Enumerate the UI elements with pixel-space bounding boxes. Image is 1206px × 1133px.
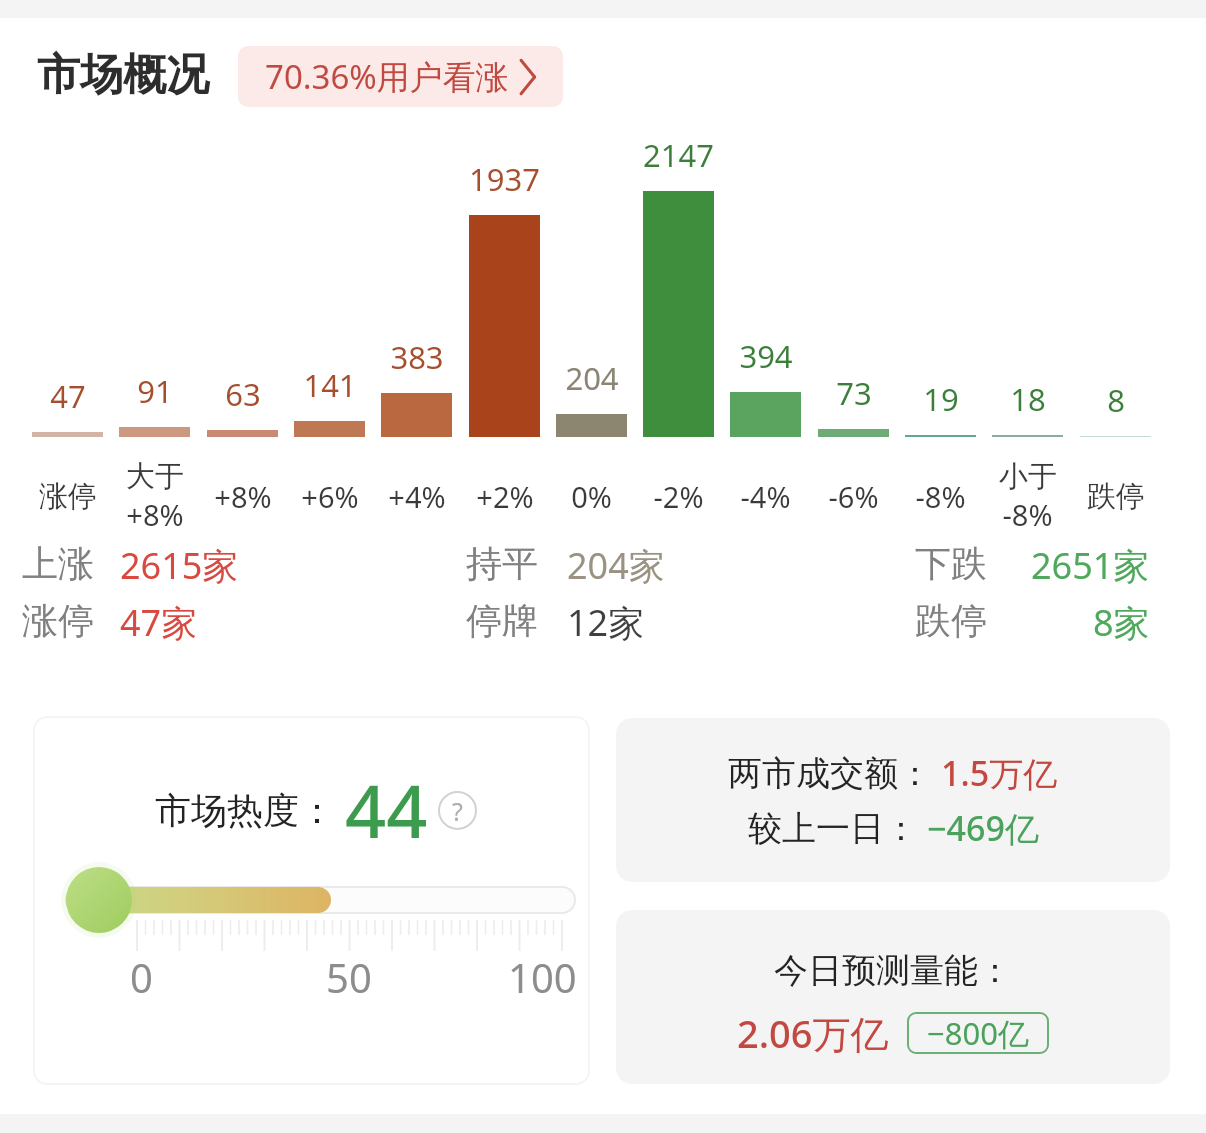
staticText: +8%	[126, 495, 184, 534]
staticText: 91	[137, 370, 173, 412]
staticText: 大于	[126, 458, 184, 495]
staticText: ?	[452, 794, 463, 828]
staticText: 下跌	[915, 541, 987, 586]
staticText: 2147	[643, 134, 714, 176]
staticText: -4%	[740, 477, 791, 516]
button[interactable]: 今日预测量能：	[616, 910, 1170, 1084]
staticText: 市场概况	[37, 48, 209, 102]
staticText: 18	[1010, 378, 1046, 420]
staticText: 394	[739, 335, 793, 377]
staticText: 383	[390, 336, 444, 378]
button[interactable]: 70.36%用户看涨	[238, 46, 563, 107]
staticText: -2%	[653, 477, 704, 516]
staticText: 12家	[567, 598, 645, 647]
staticText: 跌停	[915, 598, 987, 643]
staticText: 1.5万亿	[941, 750, 1058, 796]
button[interactable]: 市场热度：	[33, 716, 590, 1085]
staticText: 204	[565, 357, 619, 399]
staticText: 2615家	[120, 541, 239, 590]
staticText: 100	[508, 950, 577, 1004]
staticText: 两市成交额：	[728, 752, 932, 795]
staticText: 0	[130, 950, 153, 1004]
staticText: 停牌	[466, 598, 538, 643]
staticText: -6%	[828, 477, 879, 516]
staticText: 19	[923, 378, 959, 420]
other: More	[519, 58, 536, 96]
staticText: −469亿	[927, 805, 1039, 851]
staticText: 50	[326, 950, 372, 1004]
staticText: 持平	[466, 541, 538, 586]
staticText: 市场热度：	[155, 788, 335, 833]
staticText: 8	[1107, 379, 1125, 421]
staticText: 1937	[469, 158, 540, 200]
staticText: 较上一日：	[748, 807, 918, 850]
staticText: 涨停	[22, 598, 94, 643]
staticText: −800亿	[927, 1012, 1029, 1054]
staticText: 73	[836, 372, 872, 414]
staticText: 8家	[1093, 598, 1150, 647]
staticText: 47	[50, 375, 86, 417]
button[interactable]: 两市成交额：	[616, 718, 1170, 882]
staticText: 204家	[567, 541, 665, 590]
staticText: 2.06万亿	[737, 1007, 889, 1059]
staticText: 141	[303, 364, 357, 406]
staticText: -8%	[1002, 495, 1053, 534]
staticText: 47家	[120, 598, 198, 647]
staticText: 今日预测量能：	[774, 949, 1012, 992]
staticText: 上涨	[22, 541, 94, 586]
staticText: +2%	[476, 477, 534, 516]
staticText: -8%	[915, 477, 966, 516]
staticText: 涨停	[39, 478, 97, 515]
staticText: 63	[225, 373, 261, 415]
staticText: 跌停	[1087, 478, 1145, 515]
staticText: 小于	[999, 458, 1057, 495]
staticText: +8%	[214, 477, 272, 516]
staticText: 44	[345, 761, 428, 859]
staticText: 70.36%用户看涨	[265, 54, 509, 99]
staticText: +6%	[301, 477, 359, 516]
button[interactable]: Help	[438, 791, 477, 830]
staticText: +4%	[388, 477, 446, 516]
staticText: 0%	[571, 477, 612, 516]
staticText: 2651家	[1031, 541, 1150, 590]
